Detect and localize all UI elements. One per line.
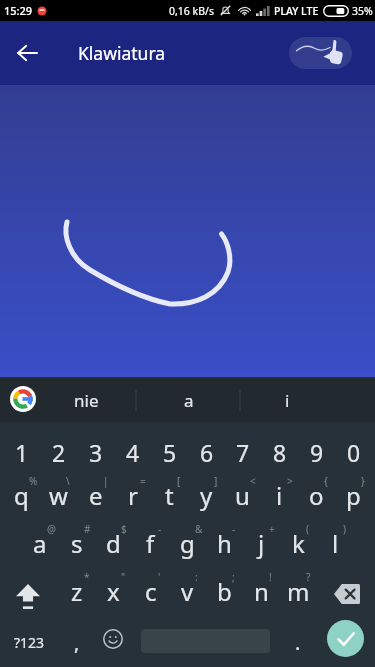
button[interactable]: - bbox=[206, 514, 243, 562]
button[interactable]: 5 bbox=[151, 429, 188, 476]
staticText: ? bbox=[306, 570, 311, 584]
staticText: ' bbox=[158, 570, 161, 584]
staticText: i bbox=[276, 479, 283, 512]
button[interactable]: ?123 bbox=[0, 620, 58, 665]
staticText: , bbox=[74, 629, 80, 656]
staticText: l bbox=[332, 527, 339, 560]
staticText: u bbox=[235, 479, 250, 512]
button[interactable]: . bbox=[281, 620, 315, 665]
staticText: i bbox=[285, 389, 290, 412]
button[interactable]: ' bbox=[132, 562, 169, 610]
staticText: } bbox=[361, 474, 365, 488]
staticText: h bbox=[217, 527, 232, 560]
button[interactable]: < bbox=[224, 466, 261, 514]
button[interactable]: $ bbox=[95, 514, 132, 562]
button[interactable]: Emoji bbox=[93, 616, 133, 661]
button[interactable]: ? bbox=[280, 562, 317, 610]
staticText: | bbox=[103, 474, 109, 488]
staticText: s bbox=[71, 527, 83, 560]
button[interactable]: [ bbox=[151, 466, 188, 514]
staticText: 7 bbox=[236, 437, 250, 468]
staticText: o bbox=[309, 479, 324, 512]
button[interactable]: : bbox=[169, 562, 206, 610]
staticText: - bbox=[232, 522, 236, 536]
staticText: 8 bbox=[273, 437, 287, 468]
staticText: a bbox=[33, 527, 47, 560]
button[interactable]: ] bbox=[188, 466, 225, 514]
staticText: t bbox=[165, 479, 174, 512]
button[interactable]: ; bbox=[206, 562, 243, 610]
button[interactable]: = bbox=[114, 466, 151, 514]
button[interactable]: % bbox=[3, 466, 40, 514]
staticText: p bbox=[346, 479, 361, 512]
button[interactable]: 3 bbox=[77, 429, 114, 476]
button[interactable]: 8 bbox=[261, 429, 298, 476]
button[interactable]: \ bbox=[40, 466, 77, 514]
staticText: 0 bbox=[347, 437, 361, 468]
button[interactable]: , bbox=[58, 620, 95, 665]
staticText: @ bbox=[47, 522, 56, 536]
button[interactable]: Back bbox=[9, 35, 45, 71]
staticText: v bbox=[181, 575, 194, 608]
button[interactable]: * bbox=[58, 562, 95, 610]
button[interactable]: # bbox=[58, 514, 95, 562]
staticText: ! bbox=[269, 570, 272, 584]
button[interactable]: 6 bbox=[188, 429, 225, 476]
button[interactable]: 0 bbox=[335, 429, 372, 476]
button[interactable]: 4 bbox=[114, 429, 151, 476]
button[interactable]: ! bbox=[243, 562, 280, 610]
button[interactable]: 2 bbox=[40, 429, 77, 476]
staticText: 9 bbox=[310, 437, 324, 468]
staticText: - bbox=[158, 522, 162, 536]
button[interactable]: ( bbox=[280, 514, 317, 562]
button[interactable]: 9 bbox=[298, 429, 335, 476]
staticText: ?123 bbox=[14, 633, 45, 652]
button[interactable]: } bbox=[335, 466, 372, 514]
button[interactable]: | bbox=[77, 466, 114, 514]
staticText: f bbox=[146, 527, 155, 560]
button[interactable]: 1 bbox=[3, 429, 40, 476]
staticText: 15:29 bbox=[4, 3, 33, 18]
button[interactable]: > bbox=[261, 466, 298, 514]
staticText: 3 bbox=[89, 437, 103, 468]
staticText: \ bbox=[66, 474, 70, 488]
button[interactable]: + bbox=[243, 514, 280, 562]
button[interactable]: & bbox=[169, 514, 206, 562]
staticText: < bbox=[250, 474, 256, 488]
staticText: { bbox=[324, 474, 328, 488]
button[interactable]: Gesture typing bbox=[289, 37, 352, 69]
staticText: 4 bbox=[126, 437, 140, 468]
staticText: ) bbox=[343, 522, 346, 536]
button[interactable]: nie bbox=[36, 378, 136, 422]
staticText: . bbox=[295, 629, 301, 656]
button[interactable]: a bbox=[137, 378, 240, 422]
staticText: Klawiatura bbox=[78, 41, 166, 65]
staticText: = bbox=[140, 474, 146, 488]
button[interactable]: i bbox=[241, 378, 333, 422]
button[interactable]: - bbox=[132, 514, 169, 562]
button[interactable]: 7 bbox=[224, 429, 261, 476]
staticText: + bbox=[269, 522, 275, 536]
staticText: 5 bbox=[163, 437, 177, 468]
staticText: ] bbox=[214, 474, 218, 488]
staticText: n bbox=[254, 575, 269, 608]
staticText: r bbox=[128, 479, 138, 512]
staticText: j bbox=[258, 527, 265, 560]
button[interactable]: Google bbox=[10, 386, 36, 412]
staticText: 35% bbox=[352, 4, 373, 18]
staticText: [ bbox=[177, 474, 181, 488]
staticText: k bbox=[292, 527, 305, 560]
button[interactable]: Enter bbox=[327, 620, 364, 657]
button[interactable]: Backspace bbox=[319, 584, 375, 632]
staticText: # bbox=[84, 522, 91, 536]
button[interactable]: @ bbox=[21, 514, 58, 562]
button[interactable]: { bbox=[298, 466, 335, 514]
staticText: & bbox=[195, 522, 203, 536]
staticText: nie bbox=[74, 389, 99, 412]
staticText: z bbox=[71, 575, 83, 608]
button[interactable]: Shift bbox=[0, 584, 56, 632]
staticText: 6 bbox=[200, 437, 214, 468]
button[interactable]: ) bbox=[317, 514, 354, 562]
button[interactable]: " bbox=[95, 562, 132, 610]
